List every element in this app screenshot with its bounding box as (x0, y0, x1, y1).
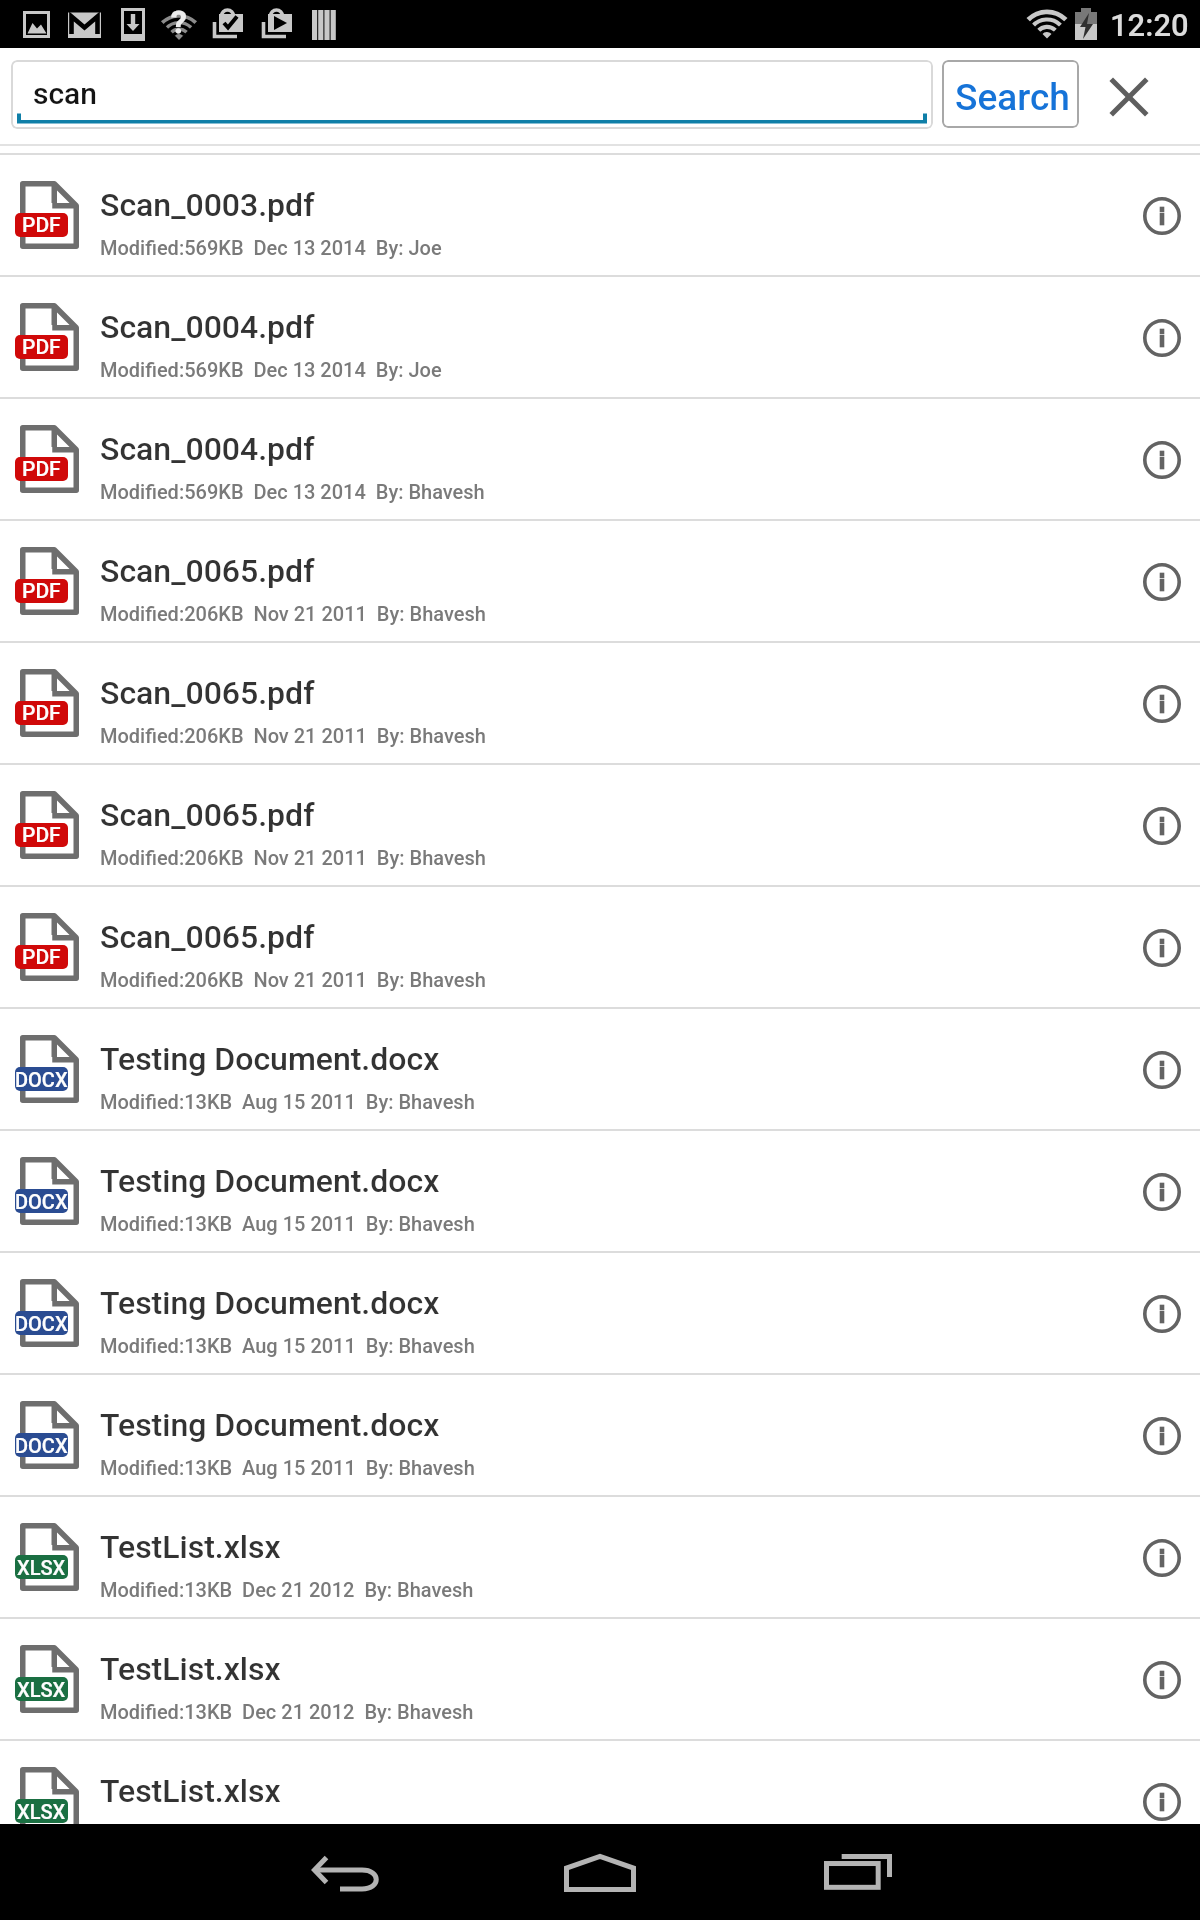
button[interactable]: PDF (0, 399, 1200, 521)
staticText: Scan_0065.pdf (100, 674, 1084, 712)
staticText: TestList.xlsx (100, 1772, 1084, 1810)
staticText: TestList.xlsx (100, 1650, 1084, 1688)
button[interactable]: Back (274, 1850, 414, 1894)
staticText: Modified:569KB Dec 13 2014 By: Joe (100, 236, 1120, 259)
button[interactable]: DOCX (0, 1131, 1200, 1253)
button[interactable]: File info (1123, 277, 1200, 399)
staticText: DOCX (15, 1190, 68, 1213)
staticText: Modified:13KB Aug 15 2011 By: Bhavesh (100, 1212, 1120, 1235)
staticText: Modified:13KB Aug 15 2011 By: Bhavesh (100, 1090, 1120, 1113)
staticText: Scan_0003.pdf (100, 186, 1084, 224)
button[interactable]: File info (1123, 1253, 1200, 1375)
staticText: Scan_0065.pdf (100, 796, 1084, 834)
button[interactable]: File info (1123, 1741, 1200, 1863)
button[interactable]: DOCX (0, 1375, 1200, 1497)
staticText: Search (955, 76, 1070, 119)
staticText: PDF (22, 213, 61, 237)
button[interactable]: XLSX (0, 1619, 1200, 1741)
staticText: scan (33, 76, 97, 111)
staticText: Modified:206KB Nov 21 2011 By: Bhavesh (100, 602, 1120, 625)
staticText: Scan_0004.pdf (100, 430, 1084, 468)
staticText: Modified:13KB Aug 15 2011 By: Bhavesh (100, 1456, 1120, 1479)
staticText: Modified:13KB Dec 21 2012 By: Bhavesh (100, 1578, 1120, 1601)
staticText: PDF (22, 579, 61, 603)
staticText: Modified:206KB Nov 21 2011 By: Bhavesh (100, 724, 1120, 747)
staticText: PDF (22, 457, 61, 481)
button[interactable]: Close search (1095, 63, 1163, 131)
button[interactable]: File info (1123, 643, 1200, 765)
staticText: Scan_0065.pdf (100, 552, 1084, 590)
staticText: Modified:569KB Dec 13 2014 By: Bhavesh (100, 480, 1120, 503)
button[interactable]: File info (1123, 765, 1200, 887)
staticText: Modified:13KB Dec 21 2012 By: Bhavesh (100, 1822, 1120, 1845)
button[interactable]: scan (11, 60, 933, 129)
button[interactable]: XLSX (0, 1497, 1200, 1619)
button[interactable]: File info (1123, 399, 1200, 521)
button[interactable]: Recent apps (790, 1850, 930, 1894)
staticText: PDF (22, 701, 61, 725)
staticText: Modified:13KB Dec 21 2012 By: Bhavesh (100, 1700, 1120, 1723)
button[interactable]: PDF (0, 521, 1200, 643)
staticText: Modified:206KB Nov 21 2011 By: Bhavesh (100, 846, 1120, 869)
staticText: Modified:13KB Aug 15 2011 By: Bhavesh (100, 1334, 1120, 1357)
button[interactable]: DOCX (0, 1009, 1200, 1131)
staticText: PDF (22, 945, 61, 969)
staticText: XLSX (17, 1800, 66, 1823)
staticText: XLSX (17, 1678, 66, 1701)
staticText: 12:20 (1110, 7, 1189, 43)
button[interactable]: DOCX (0, 1253, 1200, 1375)
button[interactable]: Search (942, 60, 1079, 128)
staticText: TestList.xlsx (100, 1528, 1084, 1566)
staticText: Testing Document.docx (100, 1040, 1084, 1078)
staticText: XLSX (17, 1556, 66, 1579)
staticText: Modified:206KB Nov 21 2011 By: Bhavesh (100, 968, 1120, 991)
button[interactable]: Home (530, 1846, 670, 1898)
button[interactable]: File info (1123, 1619, 1200, 1741)
staticText: Testing Document.docx (100, 1162, 1084, 1200)
staticText: Modified:569KB Dec 13 2014 By: Joe (100, 358, 1120, 381)
button[interactable]: File info (1123, 155, 1200, 277)
staticText: PDF (22, 335, 61, 359)
staticText: DOCX (15, 1434, 68, 1457)
button[interactable]: PDF (0, 887, 1200, 1009)
button[interactable]: PDF (0, 765, 1200, 887)
staticText: PDF (22, 823, 61, 847)
button[interactable]: File info (1123, 1009, 1200, 1131)
staticText: DOCX (15, 1312, 68, 1335)
staticText: ? (171, 3, 187, 41)
button[interactable]: File info (1123, 1375, 1200, 1497)
button[interactable]: File info (1123, 1131, 1200, 1253)
button[interactable]: PDF (0, 277, 1200, 399)
button[interactable]: File info (1123, 887, 1200, 1009)
staticText: Scan_0004.pdf (100, 308, 1084, 346)
staticText: Testing Document.docx (100, 1284, 1084, 1322)
button[interactable]: PDF (0, 155, 1200, 277)
staticText: Testing Document.docx (100, 1406, 1084, 1444)
staticText: Scan_0065.pdf (100, 918, 1084, 956)
button[interactable]: PDF (0, 643, 1200, 765)
button[interactable]: File info (1123, 1497, 1200, 1619)
staticText: DOCX (15, 1068, 68, 1091)
button[interactable]: File info (1123, 521, 1200, 643)
button[interactable]: XLSX (0, 1741, 1200, 1863)
